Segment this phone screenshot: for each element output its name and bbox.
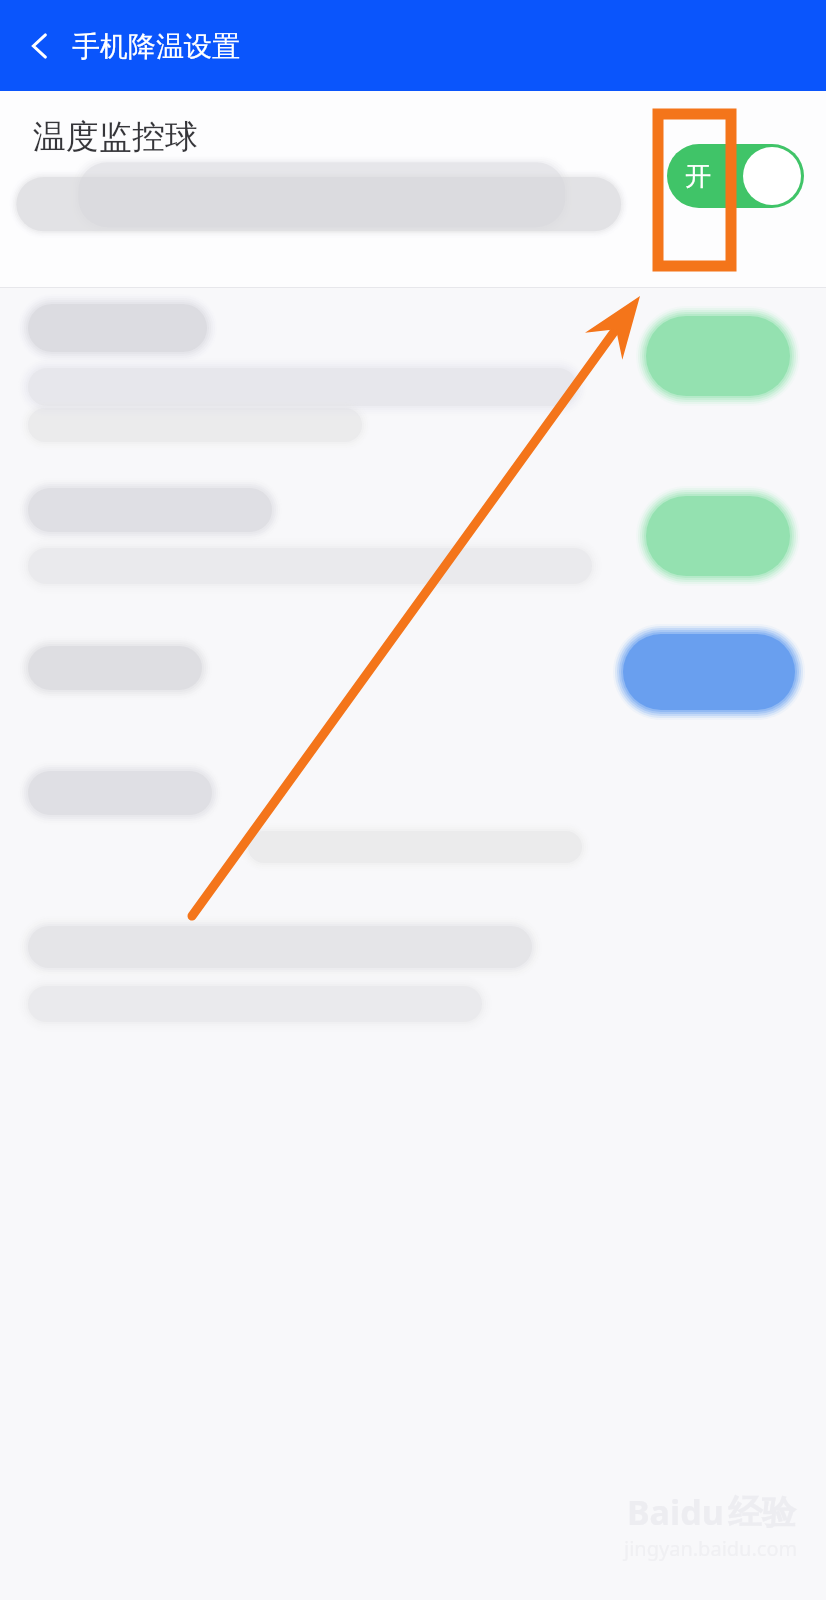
staticText: 开	[685, 160, 711, 193]
staticText: 经验	[728, 1491, 796, 1534]
button[interactable]: 温度监控球	[0, 91, 826, 287]
staticText: 手机降温设置	[72, 29, 240, 64]
button[interactable]: 温度监控球开关	[667, 144, 804, 208]
staticText: 温度监控球	[33, 116, 198, 158]
staticText: Baidu	[627, 1489, 724, 1535]
button[interactable]: Back	[14, 20, 66, 72]
